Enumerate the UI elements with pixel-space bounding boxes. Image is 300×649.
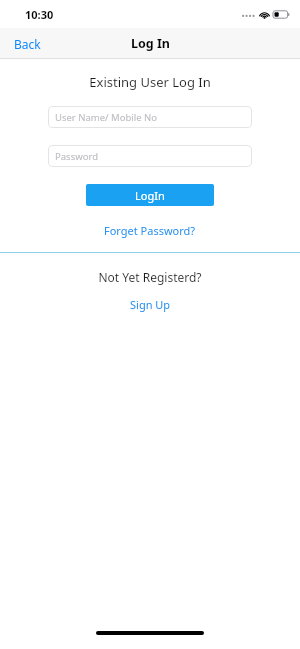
button[interactable]: Forget Password?: [0, 221, 300, 239]
button[interactable]: User Name/ Mobile No: [48, 106, 252, 128]
staticText: Existing User Log In: [0, 73, 300, 91]
button[interactable]: Password: [48, 145, 252, 167]
staticText: User Name/ Mobile No: [55, 111, 157, 124]
staticText: Back: [14, 36, 41, 52]
staticText: Password: [55, 150, 98, 163]
staticText: Log In: [131, 35, 170, 52]
staticText: Not Yet Registerd?: [0, 269, 300, 285]
staticText: 10:30: [25, 7, 54, 22]
button[interactable]: LogIn: [86, 184, 214, 206]
button[interactable]: Sign Up: [0, 295, 300, 313]
staticText: LogIn: [135, 188, 165, 203]
button[interactable]: Back: [8, 32, 47, 56]
staticText: Sign Up: [130, 297, 171, 312]
staticText: Forget Password?: [104, 223, 196, 238]
